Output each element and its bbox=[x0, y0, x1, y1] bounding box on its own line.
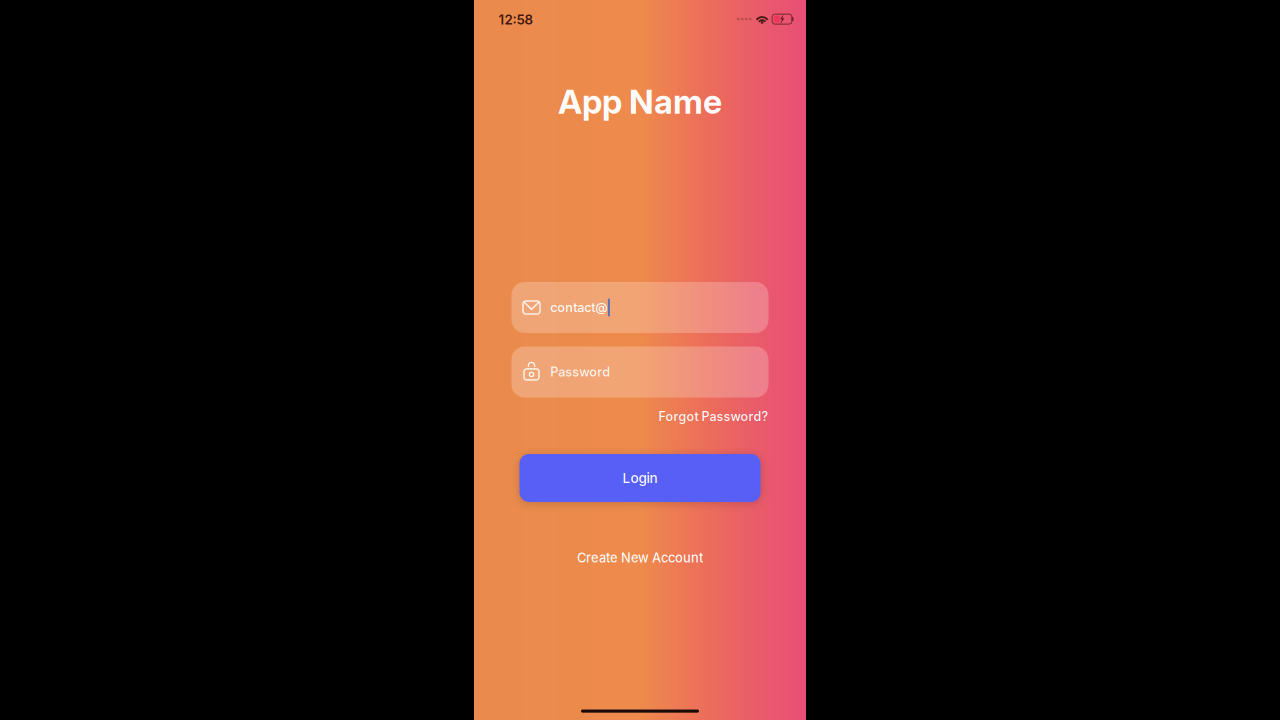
staticText: Login bbox=[622, 470, 657, 486]
button[interactable]: Password bbox=[511, 346, 768, 397]
staticText: Password bbox=[550, 364, 610, 380]
button[interactable]: Login bbox=[519, 454, 760, 502]
button[interactable]: contact@ bbox=[511, 282, 768, 333]
staticText: Create New Account bbox=[577, 550, 703, 566]
staticText: 12:58 bbox=[498, 11, 533, 28]
button[interactable]: Forgot Password? bbox=[658, 409, 768, 424]
staticText: App Name bbox=[558, 81, 722, 122]
staticText: Forgot Password? bbox=[658, 409, 768, 424]
staticText: contact@ bbox=[550, 300, 607, 315]
button[interactable]: Create New Account bbox=[577, 550, 703, 566]
